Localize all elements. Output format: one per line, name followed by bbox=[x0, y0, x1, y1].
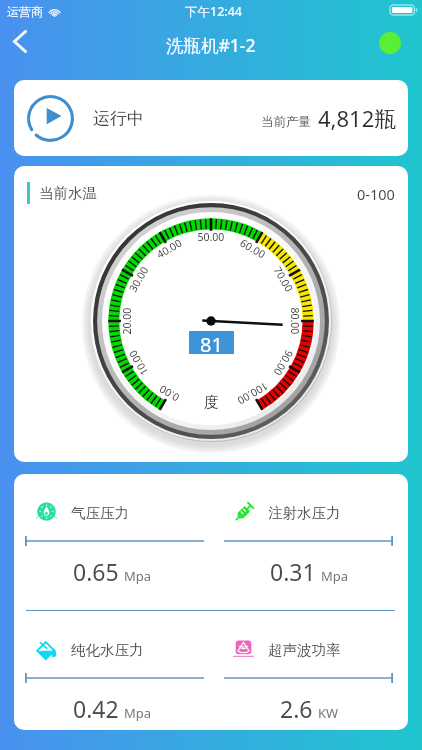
staticText: Mpa bbox=[321, 567, 349, 585]
staticText: 4,812瓶 bbox=[318, 103, 397, 133]
button[interactable]: 纯化水压力 bbox=[14, 611, 211, 730]
button[interactable]: 注射水压力 bbox=[211, 474, 408, 610]
staticText: KW bbox=[318, 704, 339, 722]
staticText: 运行中 bbox=[93, 108, 144, 129]
staticText: 运营商 bbox=[7, 4, 43, 19]
staticText: 纯化水压力 bbox=[71, 641, 144, 659]
staticText: 气压压力 bbox=[71, 504, 129, 522]
button[interactable]: 超声波功率 bbox=[211, 611, 408, 730]
staticText: 0.42 bbox=[73, 693, 119, 724]
staticText: 超声波功率 bbox=[268, 641, 341, 659]
staticText: 度 bbox=[204, 393, 219, 411]
staticText: 2.6 bbox=[280, 693, 313, 724]
button[interactable]: Back bbox=[0, 21, 40, 61]
staticText: 81 bbox=[200, 331, 223, 354]
staticText: Mpa bbox=[124, 567, 152, 585]
staticText: 0-100 bbox=[357, 184, 395, 204]
staticText: 当前产量 bbox=[261, 114, 311, 130]
staticText: Mpa bbox=[124, 704, 152, 722]
staticText: 下午12:44 bbox=[185, 3, 243, 20]
staticText: 0.65 bbox=[73, 556, 119, 587]
staticText: 注射水压力 bbox=[268, 504, 341, 522]
button[interactable]: 气压压力 bbox=[14, 474, 211, 610]
staticText: 当前水温 bbox=[39, 184, 97, 202]
staticText: 洗瓶机#1-2 bbox=[166, 33, 256, 57]
staticText: 0.31 bbox=[270, 556, 316, 587]
